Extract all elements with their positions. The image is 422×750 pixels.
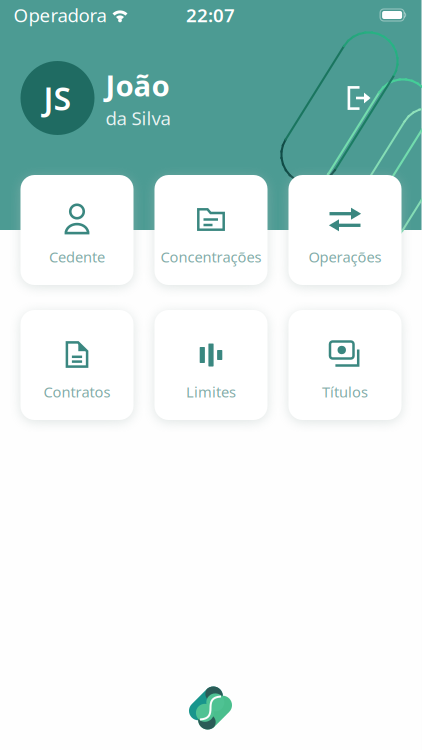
staticText: Operadora [13,3,106,27]
button[interactable]: Limites [154,310,267,420]
staticText: Cedente [49,247,105,266]
staticText: da Silva [105,106,170,130]
staticText: Limites [186,382,236,401]
staticText: Contratos [43,382,110,401]
button[interactable]: Sair [339,78,379,118]
staticText: Operações [308,247,381,266]
staticText: 22:07 [186,3,235,27]
button[interactable]: Operações [288,175,401,285]
button[interactable]: Concentrações [154,175,267,285]
staticText: Concentrações [160,247,261,266]
staticText: João [105,66,169,105]
button[interactable]: Contratos [20,310,133,420]
button[interactable]: Cedente [20,175,133,285]
staticText: Títulos [322,382,368,401]
button[interactable]: Títulos [288,310,401,420]
staticText: JS [43,77,71,119]
